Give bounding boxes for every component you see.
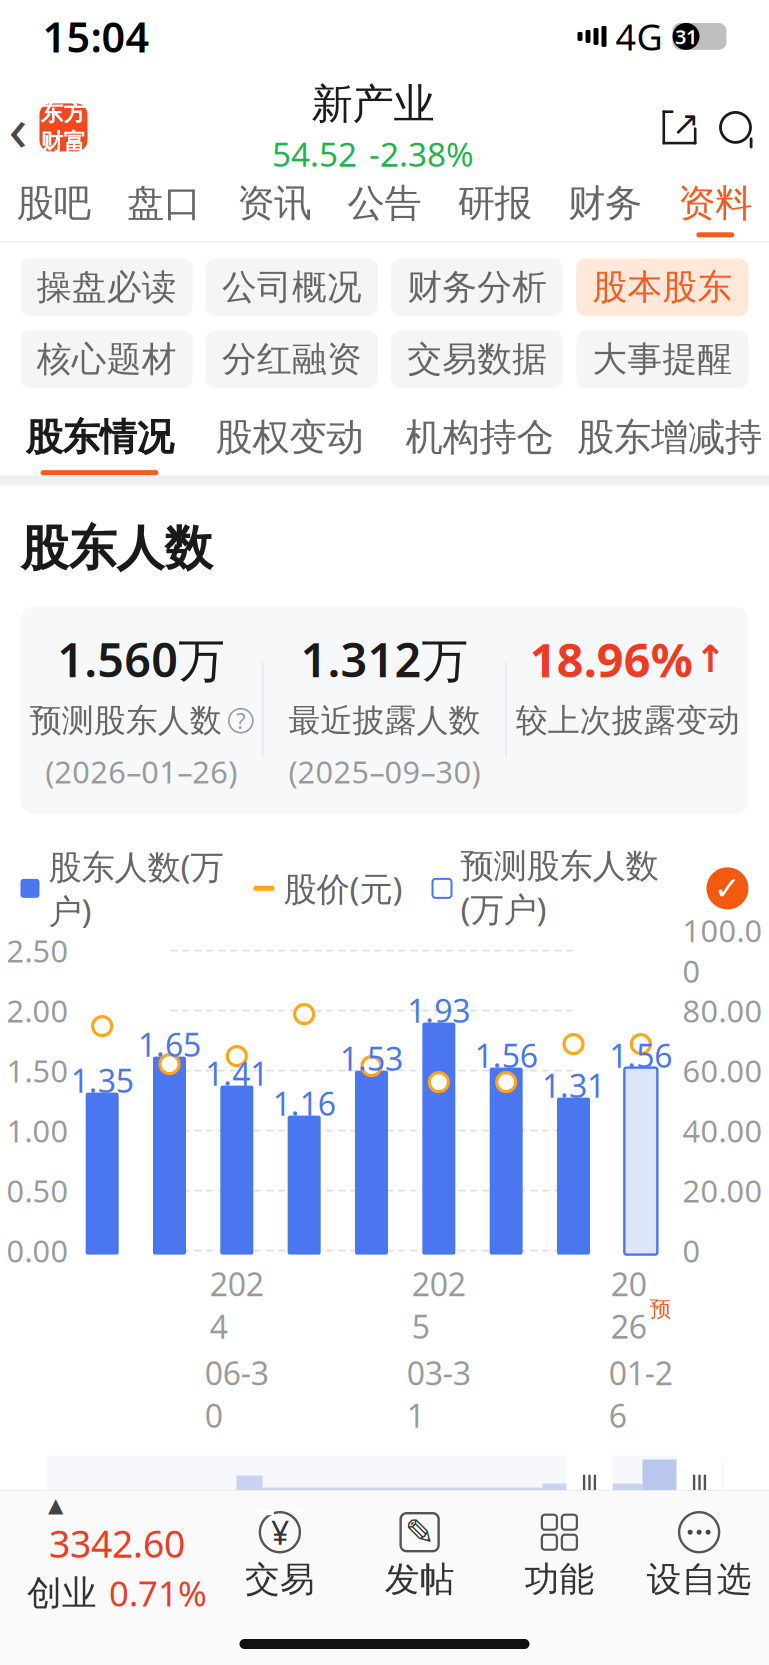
button[interactable]: 资讯 [219, 170, 329, 241]
staticText: 1.31万 [375, 1613, 485, 1662]
button[interactable]: 股本股东 [576, 258, 748, 316]
button[interactable]: 公告 [329, 170, 440, 241]
staticText: 股东总人数(户) [20, 1613, 264, 1662]
staticText: 100.00 [682, 910, 762, 991]
staticText: 交易数据 [407, 338, 547, 381]
staticText: 06-30 [205, 1352, 269, 1437]
button[interactable]: 区间起点 [566, 1451, 612, 1523]
button[interactable]: 搜索 [714, 106, 769, 148]
staticText: (2026–01–26) [45, 751, 237, 792]
staticText: 财务分析 [407, 266, 547, 309]
staticText: 18.96% [530, 628, 693, 690]
button[interactable]: 研报 [440, 170, 550, 241]
staticText: 15:04 [42, 9, 149, 64]
staticText: 大事提醒 [592, 338, 732, 381]
button[interactable]: 分红融资 [206, 330, 378, 388]
staticText: 操盘必读 [37, 266, 177, 309]
staticText: 股东增减持 [577, 414, 762, 460]
staticText: 1.93 [407, 989, 470, 1032]
button[interactable]: 大事提醒 [576, 330, 748, 388]
staticText: 1.312万 [300, 628, 468, 690]
staticText: 2026 [611, 1263, 647, 1348]
staticText: 1.56 [609, 1034, 672, 1077]
staticText: ‹ [8, 87, 27, 168]
button[interactable]: 功能 [489, 1509, 629, 1601]
staticText: 0.71% [109, 1570, 207, 1616]
staticText: 预 [650, 1296, 671, 1322]
button[interactable]: 股东增减持 [574, 388, 764, 475]
staticText: 1.00 [6, 1110, 68, 1151]
staticText: -2.38% [369, 132, 474, 176]
staticText: 创业 [27, 1572, 97, 1614]
staticText: 预测股东人数 [30, 701, 222, 740]
staticText: 较上次披露变动 [516, 701, 740, 740]
button[interactable]: 机构持仓 [384, 388, 574, 475]
button[interactable]: 返回 [0, 81, 87, 174]
staticText: 54.52 [272, 132, 357, 176]
staticText: 2.50 [6, 930, 68, 971]
button[interactable]: 资料 [660, 170, 769, 241]
button[interactable]: 公司概况 [206, 258, 378, 316]
staticText: 4G [615, 12, 662, 60]
button[interactable]: ✎ [350, 1509, 490, 1601]
staticText: 最近披露人数 [288, 701, 480, 740]
staticText: 31 [675, 23, 697, 50]
button[interactable]: 确认 [706, 867, 748, 909]
staticText: ✓ [714, 870, 741, 906]
button[interactable]: 核心题材 [20, 330, 193, 388]
staticText: ↑ [695, 638, 726, 680]
button[interactable]: 股权变动 [194, 388, 384, 475]
button[interactable]: 财务分析 [391, 258, 563, 316]
staticText: 股东人数 [20, 519, 212, 578]
button[interactable]: 创业板指数 [0, 1494, 210, 1616]
staticText: 东方 [40, 99, 86, 127]
staticText: 变动时间 [20, 1553, 160, 1596]
staticText: 股权变动 [215, 414, 363, 460]
button[interactable]: 股吧 [0, 170, 109, 241]
staticText: 资讯 [237, 180, 311, 226]
button[interactable]: 区间终点 [676, 1451, 722, 1523]
staticText: 1.65 [138, 1023, 201, 1066]
button[interactable]: 交易数据 [391, 330, 563, 388]
staticText: 研报 [458, 180, 532, 226]
button[interactable]: 设自选 [629, 1509, 769, 1601]
staticText: 0.50 [6, 1170, 68, 1211]
staticText: 2024 [210, 1263, 264, 1348]
staticText: 股吧 [17, 180, 91, 226]
staticText: 功能 [524, 1558, 594, 1601]
staticText: 公司概况 [222, 266, 362, 309]
staticText: 资料 [678, 180, 752, 226]
button[interactable]: 股东情况 [4, 388, 194, 475]
staticText: 1.53 [340, 1037, 403, 1080]
staticText: 1.31 [542, 1064, 605, 1107]
button[interactable]: 分享 [658, 106, 714, 148]
staticText: ▲ [48, 1494, 63, 1516]
staticText: 1.35 [71, 1059, 134, 1102]
staticText: ¥ [271, 1511, 289, 1553]
button[interactable]: 操盘必读 [20, 258, 193, 316]
staticText: 分红融资 [222, 338, 362, 381]
staticText: 1.560万 [57, 628, 225, 690]
staticText: 股本股东 [592, 266, 732, 309]
button[interactable]: 盘口 [109, 170, 219, 241]
staticText: 80.00 [682, 990, 762, 1031]
staticText: ✎ [405, 1512, 435, 1553]
staticText: 1.50 [6, 1050, 68, 1091]
button[interactable]: 财务 [550, 170, 660, 241]
button[interactable]: ¥ [210, 1509, 350, 1601]
staticText: 机构持仓 [405, 414, 553, 460]
staticText: 03-31 [407, 1352, 471, 1437]
staticText: (2025–09–30) [288, 751, 480, 792]
